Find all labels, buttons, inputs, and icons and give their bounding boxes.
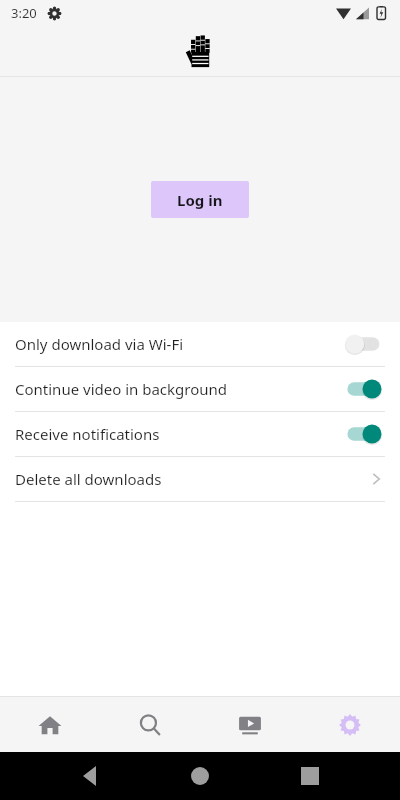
button[interactable]: Receive notifications [0, 412, 400, 456]
button[interactable]: Search [100, 697, 200, 752]
staticText: Only download via Wi-Fi [15, 334, 345, 354]
staticText: Delete all downloads [15, 469, 367, 489]
staticText: Continue video in background [15, 379, 345, 399]
button[interactable]: Only download via Wi-Fi [0, 322, 400, 366]
staticText: Log in [177, 190, 223, 210]
staticText: 3:20 [11, 4, 37, 22]
button[interactable]: Settings [300, 697, 400, 752]
button[interactable]: Library [200, 697, 300, 752]
button[interactable]: Continue video in background [0, 367, 400, 411]
button[interactable]: Log in [151, 181, 249, 218]
button[interactable]: Home [0, 697, 100, 752]
staticText: Receive notifications [15, 424, 345, 444]
button[interactable]: Delete all downloads [0, 457, 400, 501]
